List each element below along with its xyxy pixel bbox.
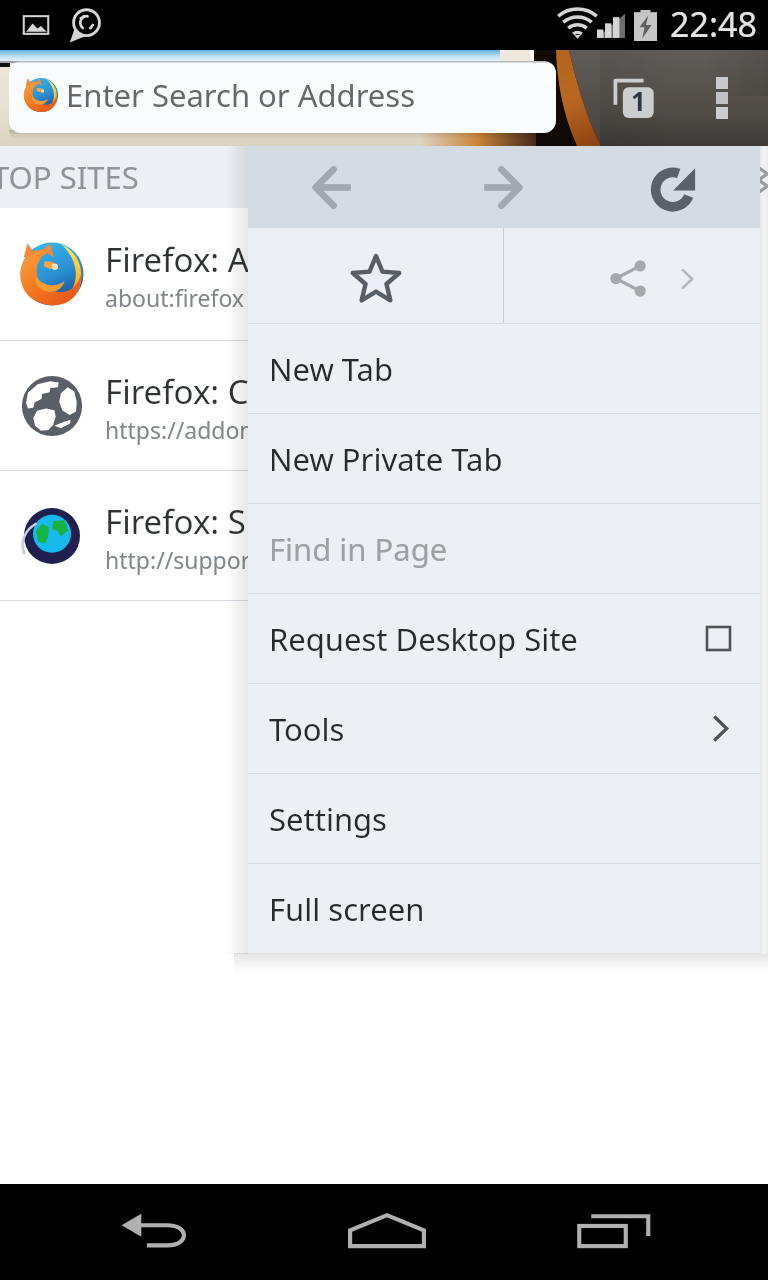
button[interactable]: More tools (760, 146, 768, 954)
staticText: Request Desktop Site (269, 618, 578, 660)
button[interactable]: Back (119, 1209, 199, 1253)
staticText: TOP SITES (0, 156, 139, 198)
staticText: Full screen (269, 888, 425, 930)
staticText: New Tab (269, 348, 394, 390)
button[interactable]: Firefox: About (0, 208, 768, 340)
button[interactable]: Menu (682, 58, 762, 138)
staticText: Settings (269, 798, 387, 840)
button[interactable]: Firefox: Support (0, 470, 768, 600)
staticText: 22:48 (670, 1, 757, 47)
button[interactable]: Recents (576, 1209, 652, 1253)
staticText: http://support.mozilla.org (105, 544, 385, 575)
button[interactable]: Forward (412, 146, 585, 228)
staticText: about:firefox (105, 282, 245, 313)
button[interactable]: Request Desktop Site (248, 594, 760, 684)
staticText: Firefox: Support (105, 499, 353, 544)
button[interactable]: Share (504, 228, 760, 323)
staticText: https://addons.mozilla.org (105, 414, 391, 445)
button[interactable]: Find in Page (248, 504, 760, 594)
staticText: Find in Page (269, 528, 448, 570)
button[interactable]: Reload (585, 146, 755, 228)
button[interactable]: Bookmark (248, 228, 503, 323)
button[interactable]: New Tab (248, 324, 760, 414)
button[interactable]: Firefox: Customize (0, 340, 768, 470)
button[interactable]: Settings (248, 774, 760, 864)
staticText: Tools (269, 708, 345, 750)
staticText: New Private Tab (269, 438, 503, 480)
button[interactable]: New Private Tab (248, 414, 760, 504)
button[interactable]: Enter Search or Address (9, 61, 556, 133)
staticText: 1 (631, 83, 646, 118)
button[interactable]: Full screen (248, 864, 760, 953)
button[interactable]: Home (346, 1209, 428, 1253)
staticText: Enter Search or Address (66, 74, 416, 116)
button[interactable]: Tools (248, 684, 760, 774)
staticText: Firefox: Customize (105, 369, 391, 414)
button[interactable]: Back (248, 146, 412, 228)
button[interactable]: Tabs (590, 56, 676, 136)
staticText: Firefox: About (105, 237, 322, 282)
